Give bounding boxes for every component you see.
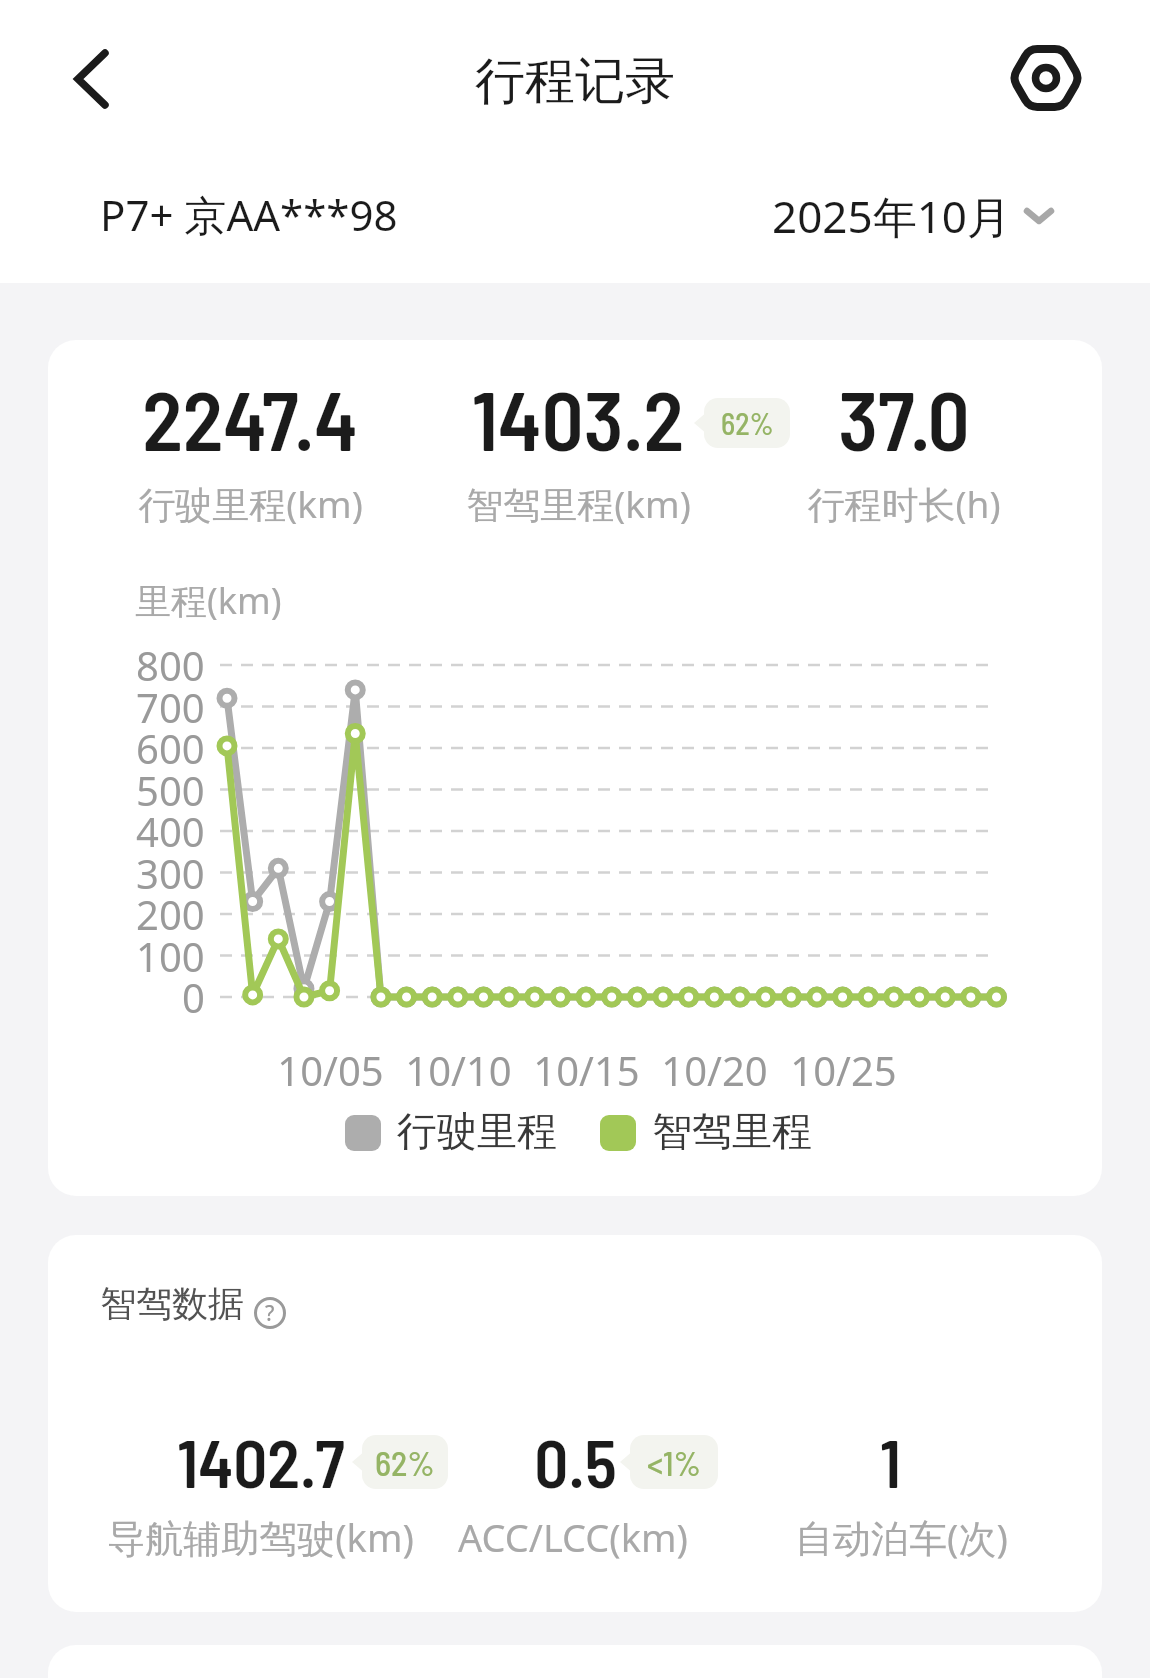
staticText: 10/25 — [790, 1043, 897, 1097]
staticText: 行驶里程(km) — [138, 478, 363, 529]
staticText: 行程记录 — [475, 50, 675, 113]
staticText: 10/10 — [405, 1043, 512, 1097]
staticText: 62% — [375, 1442, 435, 1483]
staticText: 0.5 — [534, 1421, 617, 1501]
staticText: 62% — [721, 405, 774, 441]
staticText: 10/05 — [277, 1043, 384, 1097]
staticText: <1% — [647, 1442, 701, 1483]
staticText: 智驾里程 — [652, 1106, 812, 1156]
staticText: 导航辅助驾驶(km) — [107, 1511, 414, 1563]
staticText: 800 — [136, 638, 205, 692]
staticText: 2247.4 — [142, 368, 358, 468]
staticText: 37.0 — [838, 368, 970, 468]
staticText: 行程时长(h) — [807, 478, 1001, 529]
staticText: 自动泊车(次) — [795, 1511, 1008, 1563]
staticText: 100 — [136, 929, 205, 983]
staticText: 200 — [136, 887, 205, 941]
staticText: 600 — [136, 721, 205, 775]
staticText: 智驾里程(km) — [466, 478, 691, 529]
staticText: 智驾数据 — [100, 1281, 244, 1326]
button[interactable]: ? — [254, 1297, 286, 1329]
staticText: 0 — [182, 970, 205, 1024]
staticText: 500 — [136, 763, 205, 817]
staticText: 行驶里程 — [397, 1106, 557, 1156]
button[interactable]: 2025年10月 — [772, 186, 1054, 246]
staticText: 1 — [880, 1421, 901, 1501]
staticText: ? — [265, 1299, 275, 1328]
staticText: P7+ 京AA***98 — [100, 186, 398, 243]
staticText: 10/20 — [661, 1043, 768, 1097]
staticText: 1403.2 — [472, 368, 684, 468]
staticText: 2025年10月 — [772, 186, 1012, 246]
button[interactable] — [55, 30, 125, 125]
staticText: 300 — [136, 846, 205, 900]
staticText: 1402.7 — [177, 1421, 345, 1501]
staticText: ACC/LCC(km) — [458, 1511, 688, 1563]
staticText: 700 — [136, 680, 205, 734]
staticText: 400 — [136, 804, 205, 858]
staticText: 里程(km) — [135, 576, 282, 625]
button[interactable] — [1000, 38, 1092, 118]
staticText: 10/15 — [533, 1043, 640, 1097]
